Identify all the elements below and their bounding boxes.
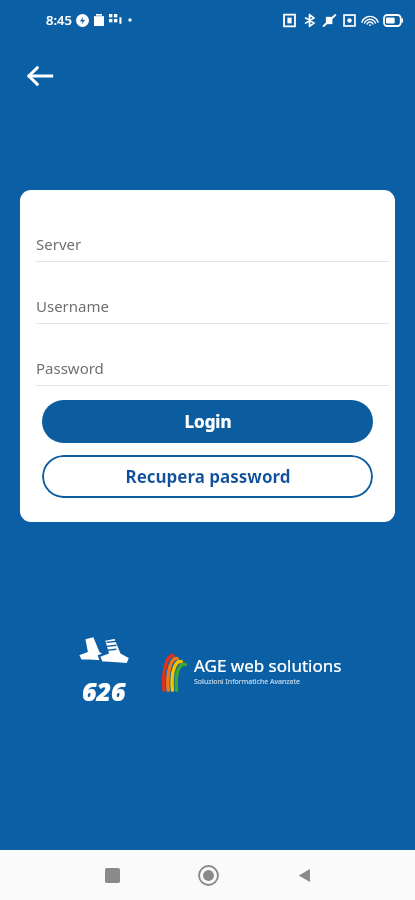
button[interactable]: Recents	[75, 850, 149, 900]
staticText: Soluzioni Informatiche Avanzate	[194, 677, 300, 687]
staticText: Username	[36, 296, 109, 316]
button[interactable]: Home	[171, 850, 245, 900]
staticText: AGE web solutions	[194, 654, 342, 677]
button[interactable]: Login	[42, 400, 373, 443]
button[interactable]: Back	[14, 50, 66, 102]
staticText: Server	[36, 234, 82, 254]
staticText: Login	[184, 410, 232, 433]
staticText: 626	[82, 674, 126, 708]
button[interactable]: Password	[20, 358, 395, 386]
button[interactable]: Recupera password	[42, 455, 373, 498]
button[interactable]: Username	[20, 296, 395, 324]
button[interactable]: Server	[20, 234, 395, 262]
staticText: Recupera password	[125, 465, 291, 488]
staticText: Password	[36, 358, 104, 378]
staticText: 8:45	[46, 11, 72, 29]
button[interactable]: Back	[267, 850, 341, 900]
